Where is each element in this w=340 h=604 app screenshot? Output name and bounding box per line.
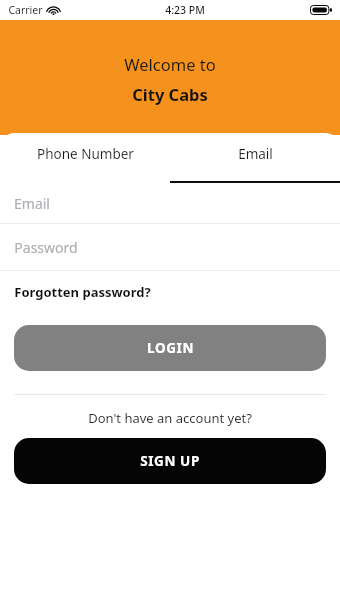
staticText: Email bbox=[14, 194, 50, 213]
staticText: Don't have an account yet? bbox=[88, 409, 252, 427]
staticText: LOGIN bbox=[147, 339, 194, 357]
button[interactable]: Email bbox=[170, 133, 340, 183]
other: Wi-Fi signal bbox=[47, 5, 60, 16]
staticText: Carrier bbox=[8, 3, 43, 17]
button[interactable]: Password bbox=[0, 224, 340, 270]
staticText: SIGN UP bbox=[140, 452, 200, 470]
other: Battery full bbox=[310, 5, 332, 15]
staticText: Welcome to bbox=[124, 53, 216, 75]
staticText: Email bbox=[238, 145, 273, 163]
staticText: Phone Number bbox=[37, 145, 134, 163]
staticText: City Cabs bbox=[132, 83, 208, 105]
button[interactable]: SIGN UP bbox=[14, 438, 326, 484]
staticText: Password bbox=[14, 238, 78, 257]
button[interactable]: Forgotten password? bbox=[14, 283, 151, 301]
staticText: Forgotten password? bbox=[14, 283, 151, 301]
button[interactable]: Email bbox=[0, 183, 340, 223]
button[interactable]: Phone Number bbox=[0, 133, 170, 183]
button[interactable]: LOGIN bbox=[14, 325, 326, 371]
staticText: 4:23 PM bbox=[165, 3, 205, 17]
